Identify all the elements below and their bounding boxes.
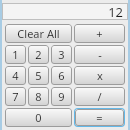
staticText: 6 bbox=[58, 68, 65, 83]
staticText: 1 bbox=[12, 47, 19, 62]
staticText: x bbox=[97, 68, 103, 83]
staticText: 3 bbox=[58, 47, 65, 62]
button[interactable]: 2 bbox=[28, 45, 49, 64]
button[interactable]: 3 bbox=[51, 45, 72, 64]
button[interactable]: - bbox=[74, 45, 125, 64]
button[interactable]: 9 bbox=[51, 87, 72, 106]
button[interactable]: 8 bbox=[28, 87, 49, 106]
staticText: / bbox=[97, 89, 102, 104]
staticText: + bbox=[96, 26, 103, 41]
staticText: Clear All bbox=[17, 26, 60, 41]
button[interactable]: 4 bbox=[5, 66, 26, 85]
button[interactable]: 0 bbox=[5, 108, 72, 127]
button[interactable]: 1 bbox=[5, 45, 26, 64]
staticText: 0 bbox=[35, 110, 42, 125]
button[interactable]: x bbox=[74, 66, 125, 85]
button[interactable]: + bbox=[74, 24, 125, 43]
button[interactable]: 6 bbox=[51, 66, 72, 85]
staticText: - bbox=[98, 47, 102, 62]
staticText: 2 bbox=[35, 47, 42, 62]
staticText: 12 bbox=[108, 3, 123, 20]
staticText: 5 bbox=[35, 68, 42, 83]
button[interactable]: = bbox=[75, 109, 124, 126]
button[interactable]: / bbox=[74, 87, 125, 106]
button[interactable]: Clear All bbox=[5, 24, 72, 43]
staticText: 9 bbox=[58, 89, 65, 104]
button[interactable]: 7 bbox=[5, 87, 26, 106]
staticText: 4 bbox=[12, 68, 19, 83]
staticText: = bbox=[96, 110, 103, 125]
button[interactable]: 5 bbox=[28, 66, 49, 85]
staticText: 8 bbox=[35, 89, 42, 104]
staticText: 7 bbox=[12, 89, 19, 104]
